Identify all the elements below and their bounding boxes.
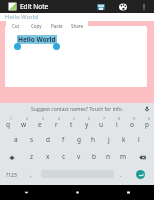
button[interactable]: l	[131, 132, 146, 149]
staticText: u	[99, 120, 104, 129]
staticText: 6	[88, 116, 91, 121]
staticText: ,	[30, 171, 32, 179]
staticText: g	[77, 135, 81, 144]
button[interactable]: Back	[0, 185, 52, 200]
staticText: t	[70, 120, 73, 129]
staticText: x	[46, 152, 50, 161]
button[interactable]: z	[24, 149, 40, 166]
button[interactable]: Copy	[26, 21, 46, 31]
button[interactable]: r	[48, 115, 64, 132]
button[interactable]: Share	[67, 21, 88, 31]
button[interactable]: Home	[52, 185, 103, 200]
staticText: 8	[118, 116, 121, 121]
button[interactable]: k	[116, 132, 131, 149]
button[interactable]: ,	[22, 166, 40, 185]
button[interactable]: c	[56, 149, 71, 166]
staticText: i	[116, 120, 118, 129]
button[interactable]: j	[101, 132, 116, 149]
button[interactable]: More options	[137, 0, 150, 13]
staticText: Edit Note	[20, 2, 49, 11]
button[interactable]: n	[101, 149, 116, 166]
staticText: Hello World	[5, 13, 38, 21]
button[interactable]: Note icon	[8, 2, 17, 11]
staticText: 4	[58, 116, 61, 121]
button[interactable]: e	[32, 115, 48, 132]
staticText: q	[6, 120, 10, 129]
button[interactable]: p	[139, 115, 154, 132]
staticText: y	[85, 120, 89, 129]
staticText: 2	[26, 116, 29, 121]
button[interactable]: x	[40, 149, 56, 166]
button[interactable]: s	[24, 132, 40, 149]
button[interactable]: v	[71, 149, 86, 166]
staticText: s	[30, 135, 34, 144]
button[interactable]: Enter	[136, 170, 145, 179]
staticText: 7	[103, 116, 106, 121]
button[interactable]: q	[0, 115, 16, 132]
button[interactable]: ?123	[0, 166, 22, 185]
button[interactable]: Cut	[6, 21, 26, 31]
staticText: c	[62, 152, 66, 161]
staticText: .	[120, 171, 122, 179]
staticText: Suggest contact names? Touch for info.	[31, 106, 124, 113]
staticText: 3	[42, 116, 45, 121]
staticText: z	[30, 152, 34, 161]
staticText: Share	[71, 23, 84, 29]
staticText: j	[108, 135, 110, 144]
button[interactable]: i	[109, 115, 124, 132]
staticText: w	[21, 120, 27, 129]
button[interactable]: a	[8, 132, 24, 149]
button[interactable]: y	[79, 115, 94, 132]
staticText: k	[122, 135, 126, 144]
staticText: l	[138, 135, 140, 144]
button[interactable]: h	[86, 132, 101, 149]
button[interactable]: u	[94, 115, 109, 132]
button[interactable]: b	[86, 149, 101, 166]
staticText: v	[77, 152, 81, 161]
staticText: b	[92, 152, 96, 161]
button[interactable]: Shift	[0, 149, 24, 166]
staticText: Hello World	[18, 35, 56, 44]
staticText: 9	[133, 116, 136, 121]
button[interactable]: t	[64, 115, 79, 132]
staticText: o	[130, 120, 134, 129]
button[interactable]: m	[116, 149, 131, 166]
button[interactable]: o	[124, 115, 139, 132]
button[interactable]: Paste	[46, 21, 67, 31]
button[interactable]: w	[16, 115, 32, 132]
staticText: Copy	[31, 23, 42, 29]
staticText: e	[38, 120, 42, 129]
staticText: 0	[148, 116, 151, 121]
staticText: p	[145, 120, 149, 129]
staticText: Paste	[51, 23, 63, 29]
staticText: h	[91, 135, 96, 144]
staticText: n	[106, 152, 111, 161]
staticText: a	[14, 135, 18, 144]
staticText: Cut	[12, 23, 20, 29]
staticText: 1	[10, 116, 13, 121]
button[interactable]: Save	[94, 0, 107, 13]
button[interactable]: Backspace	[131, 149, 154, 166]
staticText: f	[62, 135, 65, 144]
staticText: m	[120, 152, 127, 161]
staticText: ?123	[6, 172, 17, 179]
staticText: r	[55, 120, 58, 129]
button[interactable]: g	[71, 132, 86, 149]
button[interactable]: f	[56, 132, 71, 149]
button[interactable]: Colour palette	[116, 0, 129, 13]
staticText: d	[46, 135, 50, 144]
button[interactable]: d	[40, 132, 56, 149]
button[interactable]: Recents	[103, 185, 154, 200]
staticText: 5	[73, 116, 76, 121]
button[interactable]: Voice input	[140, 103, 154, 115]
